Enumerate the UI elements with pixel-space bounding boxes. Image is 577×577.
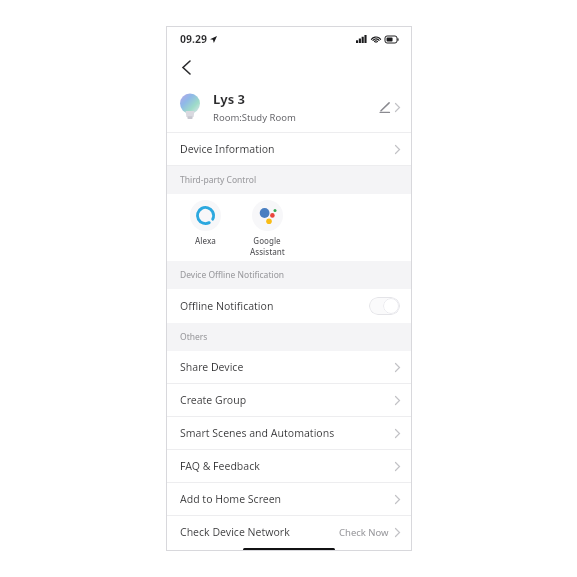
button[interactable]: Add to Home Screen <box>166 483 412 515</box>
staticText: Third-party Control <box>180 174 257 186</box>
staticText: Device Information <box>180 142 275 156</box>
staticText: Offline Notification <box>180 299 274 313</box>
button[interactable]: Check Device Network <box>166 516 412 548</box>
staticText: Add to Home Screen <box>180 492 282 506</box>
staticText: Room:Study Room <box>213 111 296 124</box>
staticText: Lys 3 <box>213 90 246 108</box>
other: Offline Notification toggle <box>369 297 400 315</box>
button[interactable]: Back <box>174 55 198 79</box>
button[interactable]: Share Device <box>166 351 412 383</box>
staticText: Create Group <box>180 393 247 407</box>
staticText: Google <box>253 235 281 246</box>
button[interactable]: Device Information <box>166 133 412 165</box>
button[interactable]: Smart Scenes and Automations <box>166 417 412 449</box>
button[interactable]: Lys 3 <box>166 82 412 132</box>
staticText: Others <box>180 331 208 343</box>
staticText: Assistant <box>250 246 285 257</box>
staticText: 09.29 <box>180 32 207 46</box>
staticText: Smart Scenes and Automations <box>180 426 335 440</box>
button[interactable]: Create Group <box>166 384 412 416</box>
staticText: Share Device <box>180 360 244 374</box>
staticText: Check Now <box>339 526 389 539</box>
staticText: Check Device Network <box>180 525 290 539</box>
button[interactable]: Alexa <box>182 194 228 246</box>
staticText: FAQ & Feedback <box>180 459 260 473</box>
button[interactable]: FAQ & Feedback <box>166 450 412 482</box>
staticText: Device Offline Notification <box>180 269 285 281</box>
button[interactable]: Google <box>244 194 290 257</box>
button[interactable]: Offline Notification <box>166 289 412 323</box>
staticText: Alexa <box>195 235 216 246</box>
button[interactable]: Edit device name <box>375 98 393 116</box>
